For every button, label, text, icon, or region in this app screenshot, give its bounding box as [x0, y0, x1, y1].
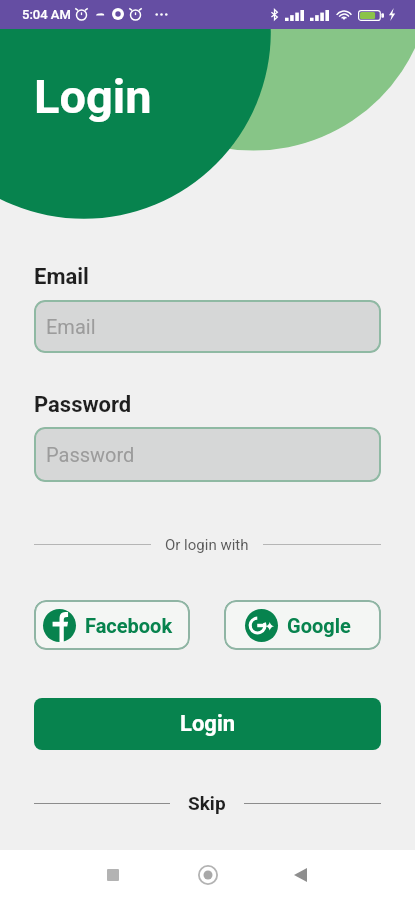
button[interactable]: Google: [224, 600, 381, 650]
button[interactable]: Password: [34, 427, 381, 482]
staticText: Google: [287, 614, 351, 637]
button[interactable]: Facebook: [34, 600, 190, 650]
staticText: Login: [34, 69, 152, 124]
staticText: Password: [34, 392, 132, 418]
button[interactable]: Email: [34, 300, 381, 353]
button[interactable]: Login: [34, 698, 381, 750]
button[interactable]: Home: [184, 851, 232, 899]
staticText: Facebook: [85, 614, 173, 637]
staticText: Email: [46, 315, 96, 338]
staticText: Password: [46, 443, 135, 466]
button[interactable]: Skip: [170, 792, 244, 814]
staticText: 5:04 AM: [22, 7, 71, 22]
button[interactable]: Back: [276, 851, 324, 899]
staticText: Or login with: [165, 536, 249, 554]
staticText: Login: [180, 711, 236, 737]
staticText: Email: [34, 264, 89, 290]
button[interactable]: Recent apps: [89, 851, 137, 899]
